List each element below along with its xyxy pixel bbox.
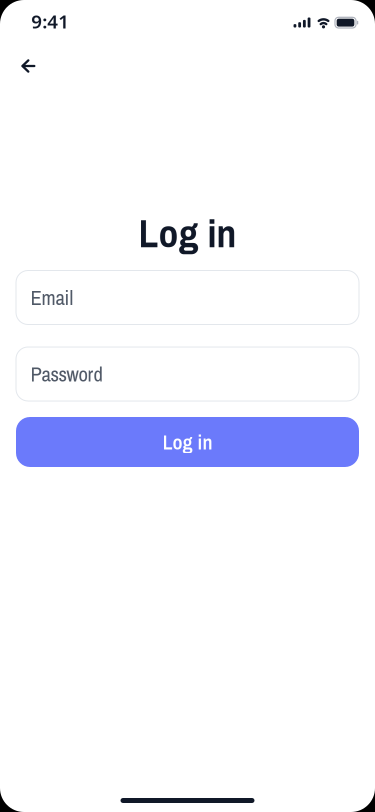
staticText: Email <box>30 284 73 311</box>
button[interactable]: Password <box>16 347 359 401</box>
button[interactable]: Email <box>16 270 359 324</box>
staticText: Password <box>30 360 102 388</box>
staticText: Log in <box>138 206 236 260</box>
button[interactable]: Back <box>12 50 44 82</box>
staticText: 9:41 <box>31 9 69 34</box>
staticText: Log in <box>162 428 212 456</box>
button[interactable]: Log in <box>16 417 359 467</box>
